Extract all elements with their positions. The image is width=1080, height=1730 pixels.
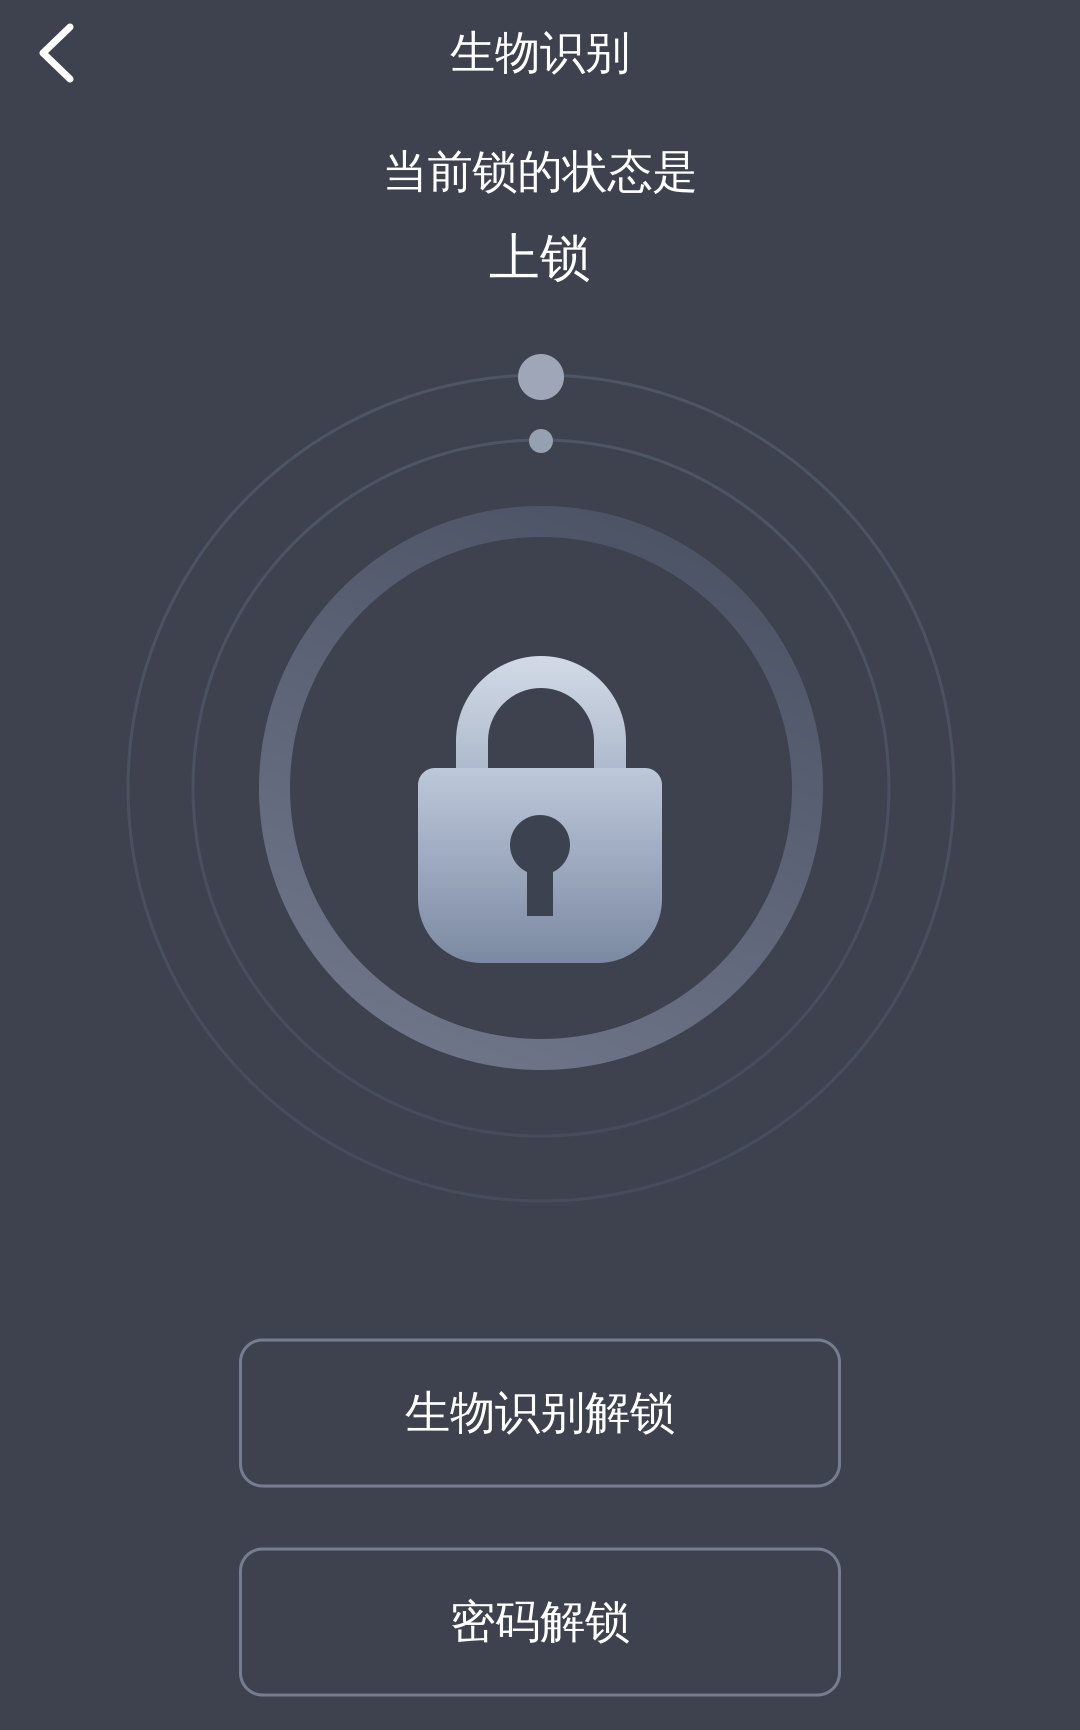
button[interactable]: 密码解锁	[240, 1549, 839, 1695]
staticText: 密码解锁	[450, 1594, 630, 1650]
staticText: 生物识别解锁	[405, 1385, 675, 1441]
staticText: 当前锁的状态是	[382, 144, 697, 200]
button[interactable]: 生物识别解锁	[240, 1340, 839, 1486]
staticText: 上锁	[489, 227, 591, 289]
button[interactable]: Back	[0, 0, 110, 107]
staticText: 生物识别	[450, 25, 630, 81]
